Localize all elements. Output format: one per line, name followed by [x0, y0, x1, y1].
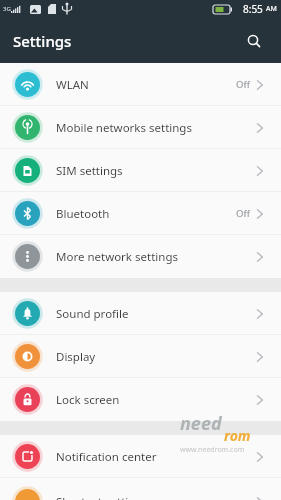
staticText: SIM settings — [56, 163, 256, 179]
staticText: Off — [236, 207, 250, 220]
button[interactable]: More network settings — [0, 235, 281, 278]
staticText: Lock screen — [56, 392, 256, 408]
staticText: 8:55 — [243, 2, 266, 16]
staticText: More network settings — [56, 249, 256, 265]
staticText: 3G — [3, 5, 11, 13]
button[interactable]: Mobile networks settings — [0, 106, 281, 149]
button[interactable]: Shortcut settings — [0, 480, 281, 500]
staticText: Notification center — [56, 449, 256, 465]
staticText: Mobile networks settings — [56, 120, 256, 136]
button[interactable]: SIM settings — [0, 149, 281, 192]
button[interactable]: Sound profile — [0, 292, 281, 335]
button[interactable] — [240, 27, 268, 55]
button[interactable]: Display — [0, 335, 281, 378]
staticText: rom — [224, 426, 251, 445]
staticText: WLAN — [56, 77, 236, 93]
button[interactable]: Notification center — [0, 435, 281, 478]
staticText: Shortcut settings — [56, 494, 256, 500]
staticText: Display — [56, 349, 256, 365]
button[interactable]: Bluetooth — [0, 192, 281, 235]
button[interactable]: WLAN — [0, 63, 281, 106]
staticText: Off — [236, 78, 250, 91]
staticText: AM — [266, 4, 277, 14]
staticText: www.needrom.com — [180, 445, 245, 455]
button[interactable]: Lock screen — [0, 378, 281, 421]
staticText: Settings — [13, 31, 72, 51]
staticText: Sound profile — [56, 306, 256, 322]
staticText: need — [180, 411, 222, 436]
staticText: Bluetooth — [56, 206, 236, 222]
